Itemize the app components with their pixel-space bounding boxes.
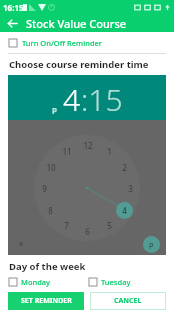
staticText: a — [19, 239, 24, 249]
staticText: Monday — [21, 277, 51, 287]
staticText: 3 — [128, 183, 133, 194]
button[interactable]: 3 — [122, 180, 139, 197]
staticText: 5 — [107, 220, 112, 231]
button[interactable]: CANCEL — [90, 292, 166, 310]
staticText: SET REMINDER — [21, 296, 72, 306]
button[interactable]: a — [14, 236, 29, 251]
button[interactable]: 2 — [116, 159, 133, 176]
button[interactable]: 11 — [58, 143, 75, 160]
button[interactable]: 7 — [58, 217, 75, 234]
staticText: 6 — [85, 226, 90, 237]
staticText: 10 — [46, 162, 56, 173]
staticText: 12 — [83, 140, 93, 151]
button[interactable]: Back — [4, 15, 20, 31]
button[interactable]: 6 — [79, 223, 96, 240]
staticText: 11 — [62, 146, 72, 157]
button[interactable]: 5 — [101, 217, 118, 234]
button[interactable]: 4 — [116, 202, 133, 219]
staticText: 4 — [63, 79, 81, 120]
button[interactable]: 9 — [36, 180, 53, 197]
button[interactable]: p — [143, 236, 160, 253]
staticText: P — [52, 105, 57, 116]
staticText: Turn On/Off Reminder — [22, 38, 103, 48]
staticText: 1 — [107, 146, 112, 157]
staticText: p — [149, 240, 154, 250]
button[interactable]: 10 — [42, 159, 59, 176]
button[interactable]: 8 — [42, 202, 59, 219]
staticText: 7 — [64, 220, 69, 231]
staticText: Choose course reminder time — [9, 58, 149, 71]
button[interactable]: 12 — [79, 137, 96, 154]
staticText: Stock Value Course — [26, 16, 127, 31]
staticText: :15 — [81, 79, 123, 120]
staticText: 4 — [122, 205, 127, 216]
button[interactable]: Monday — [0, 276, 87, 288]
button[interactable]: SET REMINDER — [8, 292, 84, 310]
button[interactable]: Tuesday — [87, 276, 174, 288]
staticText: Tuesday — [101, 277, 131, 287]
button[interactable]: Turn On/Off Reminder — [0, 36, 174, 50]
staticText: 16:15 — [3, 2, 24, 13]
staticText: 8 — [48, 205, 53, 216]
staticText: CANCEL — [114, 296, 142, 306]
staticText: 2 — [122, 162, 127, 173]
staticText: 9 — [42, 183, 47, 194]
button[interactable]: 1 — [101, 143, 118, 160]
staticText: Day of the week — [9, 260, 86, 273]
